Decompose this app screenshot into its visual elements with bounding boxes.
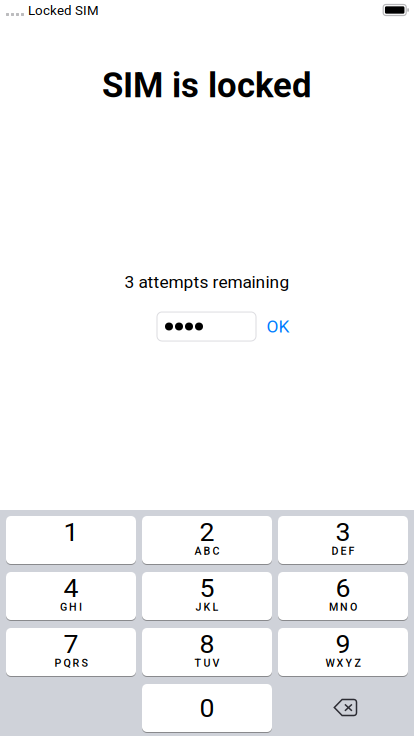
staticText: G H I <box>60 601 82 613</box>
button[interactable]: 3 <box>278 516 408 564</box>
staticText: 8 <box>199 628 214 660</box>
button[interactable]: 7 <box>6 628 136 676</box>
button[interactable]: 2 <box>142 516 272 564</box>
staticText: 3 <box>335 516 350 548</box>
staticText: A B C <box>194 545 219 557</box>
button[interactable]: 9 <box>278 628 408 676</box>
staticText: 3 attempts remaining <box>124 272 289 292</box>
staticText: 7 <box>63 628 78 660</box>
staticText: Locked SIM <box>28 3 99 18</box>
staticText: W X Y Z <box>325 657 360 669</box>
staticText: 9 <box>335 628 350 660</box>
staticText: 2 <box>199 516 214 548</box>
staticText: J K L <box>195 601 218 613</box>
staticText: D E F <box>331 545 354 557</box>
button[interactable]: Delete <box>278 684 408 732</box>
staticText: SIM is locked <box>102 65 312 106</box>
staticText: M N O <box>329 601 357 613</box>
staticText: 0 <box>199 692 214 724</box>
button[interactable]: 5 <box>142 572 272 620</box>
staticText: 6 <box>335 572 350 604</box>
button[interactable]: 6 <box>278 572 408 620</box>
staticText: 4 <box>63 572 78 604</box>
button[interactable]: 1 <box>6 516 136 564</box>
staticText: T U V <box>194 657 219 669</box>
button[interactable]: 0 <box>142 684 272 732</box>
button[interactable]: OK <box>256 312 300 341</box>
button[interactable]: 4 <box>6 572 136 620</box>
staticText: P Q R S <box>54 657 87 669</box>
button[interactable]: 8 <box>142 628 272 676</box>
staticText: 1 <box>63 516 78 548</box>
staticText: 5 <box>199 572 214 604</box>
staticText: OK <box>266 316 289 337</box>
